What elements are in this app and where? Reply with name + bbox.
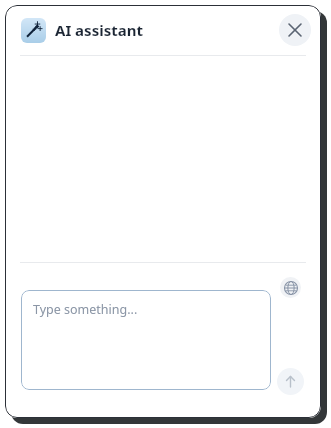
button[interactable]: Type something... (21, 290, 271, 390)
button[interactable]: Send (277, 368, 304, 395)
staticText: AI assistant (55, 20, 143, 40)
button[interactable]: Language (280, 277, 301, 298)
button[interactable]: Close (279, 14, 311, 46)
staticText: Type something... (33, 301, 138, 318)
